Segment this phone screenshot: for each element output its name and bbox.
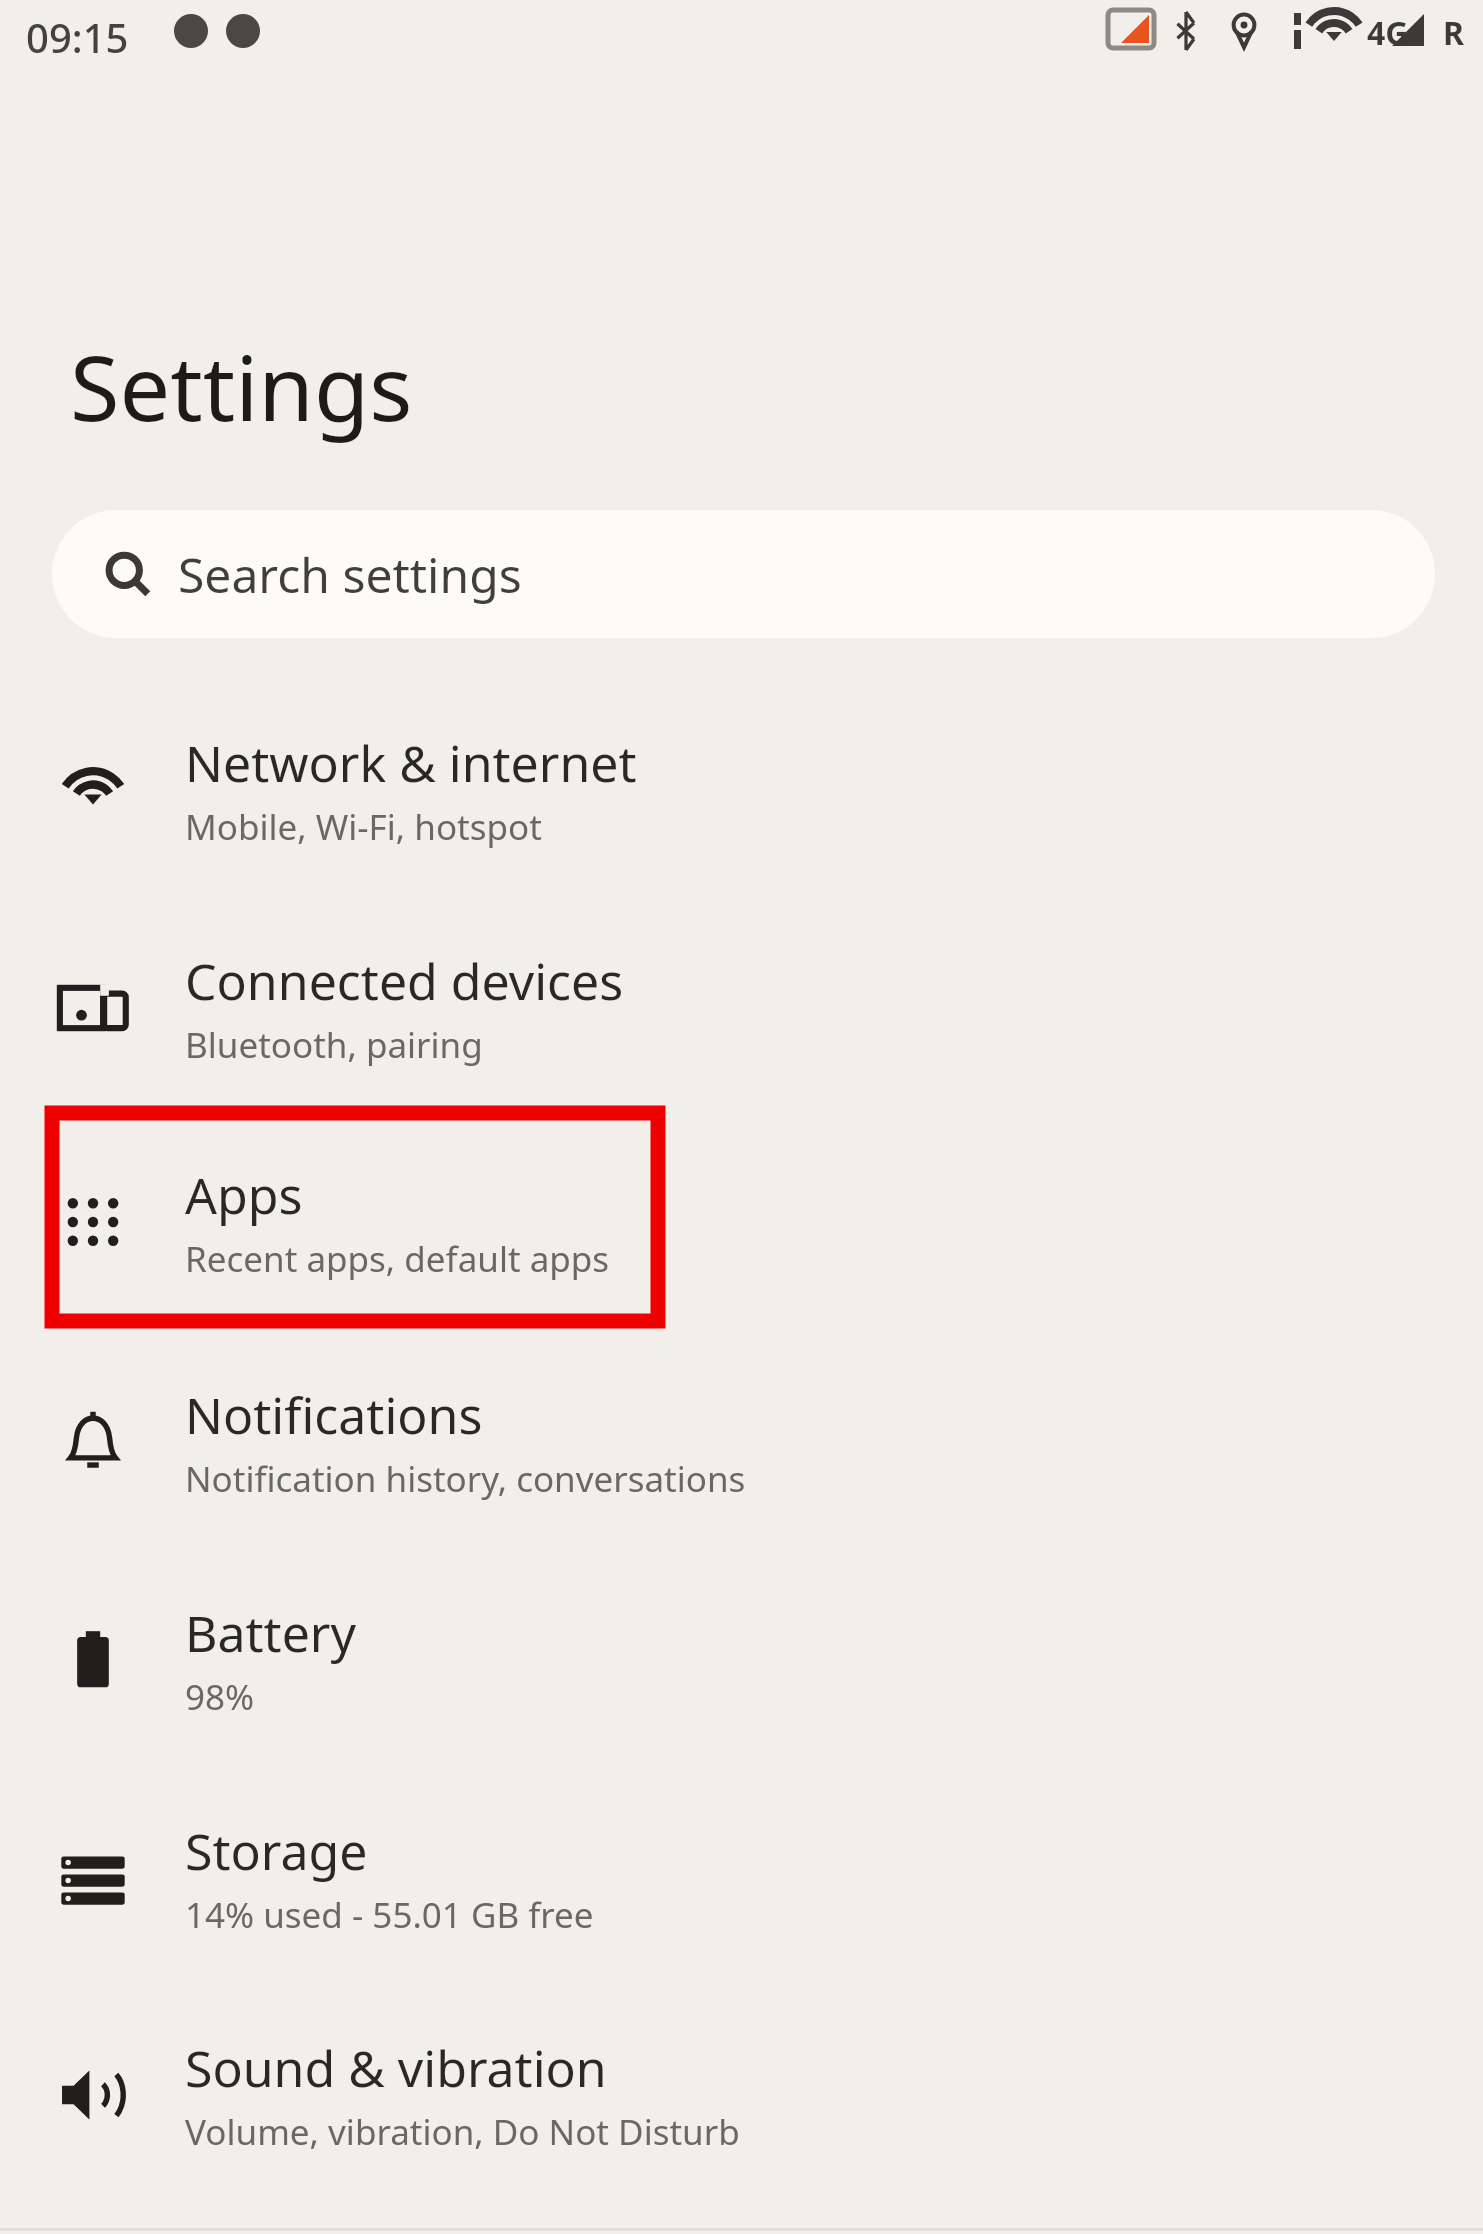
- button[interactable]: Network & internet: [0, 690, 1483, 890]
- staticText: Apps: [185, 1161, 303, 1229]
- staticText: 4G: [1367, 11, 1409, 55]
- staticText: Network & internet: [185, 729, 637, 797]
- staticText: Storage: [185, 1817, 368, 1885]
- button[interactable]: Storage: [0, 1778, 1483, 1978]
- staticText: Mobile, Wi-Fi, hotspot: [185, 803, 542, 851]
- staticText: 98%: [185, 1673, 255, 1721]
- staticText: Search settings: [178, 542, 522, 607]
- button[interactable]: Notifications: [0, 1342, 1483, 1542]
- button[interactable]: Apps: [0, 1122, 1483, 1322]
- staticText: Battery: [185, 1599, 356, 1667]
- staticText: R: [1443, 11, 1464, 55]
- button[interactable]: Battery: [0, 1560, 1483, 1760]
- staticText: Bluetooth, pairing: [185, 1021, 483, 1069]
- staticText: 09:15: [26, 10, 129, 64]
- button[interactable]: Sound & vibration: [0, 1995, 1483, 2195]
- staticText: Volume, vibration, Do Not Disturb: [185, 2108, 740, 2156]
- staticText: Recent apps, default apps: [185, 1235, 610, 1283]
- staticText: Sound & vibration: [185, 2034, 607, 2102]
- button[interactable]: Connected devices: [0, 908, 1483, 1108]
- staticText: Notifications: [185, 1381, 483, 1449]
- staticText: Connected devices: [185, 947, 624, 1015]
- staticText: Settings: [70, 325, 413, 448]
- button[interactable]: Search settings: [52, 510, 1435, 638]
- staticText: 14% used - 55.01 GB free: [185, 1891, 594, 1939]
- staticText: Notification history, conversations: [185, 1455, 746, 1503]
